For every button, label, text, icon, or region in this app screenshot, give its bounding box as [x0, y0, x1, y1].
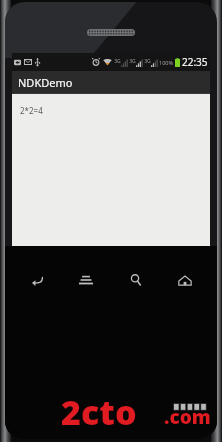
staticText: .com [164, 404, 211, 430]
button[interactable]: Recent apps [69, 263, 103, 297]
button[interactable]: Back [20, 263, 54, 297]
button[interactable]: Home [168, 263, 202, 297]
staticText: 3G [114, 58, 121, 65]
button[interactable]: Search [119, 263, 153, 297]
staticText: 22:35 [182, 55, 208, 69]
staticText: 2cto [61, 389, 137, 433]
staticText: 2*2=4 [20, 105, 43, 116]
staticText: 3G [129, 58, 136, 65]
staticText: 100% [159, 59, 174, 66]
staticText: 3G [144, 58, 151, 65]
staticText: NDKDemo [18, 75, 73, 90]
button[interactable]: NDKDemo [12, 71, 210, 93]
